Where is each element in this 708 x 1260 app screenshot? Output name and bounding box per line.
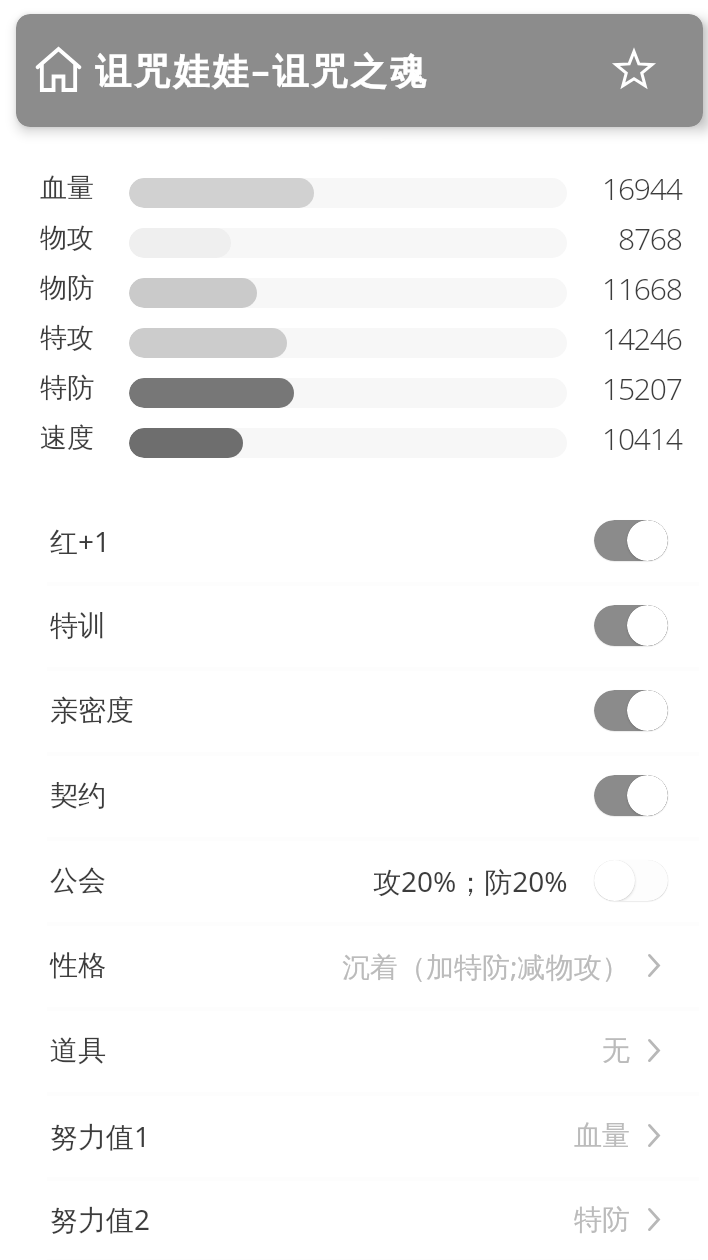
staticText: 血量 <box>574 1118 630 1153</box>
staticText: 10414 <box>602 418 682 459</box>
button[interactable]: 红+1 switch, on <box>594 520 668 561</box>
button[interactable]: 性格 <box>0 923 708 1008</box>
button[interactable]: Favorite <box>606 43 662 99</box>
button[interactable]: 努力值1 <box>0 1093 708 1178</box>
staticText: 努力值1 <box>50 1117 151 1155</box>
staticText: 物防 <box>40 271 112 305</box>
staticText: 特攻 <box>40 321 112 355</box>
button[interactable]: 特训 switch, on <box>594 605 668 646</box>
button[interactable]: 努力值2 <box>0 1178 708 1260</box>
button[interactable]: 道具 <box>0 1008 708 1093</box>
staticText: 特防 <box>40 371 112 405</box>
staticText: 8768 <box>618 218 682 259</box>
staticText: 努力值2 <box>50 1200 151 1238</box>
staticText: 16944 <box>602 168 682 209</box>
staticText: 特防 <box>574 1202 630 1237</box>
button[interactable]: 公会 switch, off <box>594 860 668 901</box>
staticText: 性格 <box>50 948 106 983</box>
button[interactable]: 红+1 <box>0 498 708 583</box>
staticText: 特训 <box>50 608 106 643</box>
staticText: 契约 <box>50 778 106 813</box>
button[interactable]: 契约 <box>0 753 708 838</box>
staticText: 无 <box>602 1033 630 1068</box>
staticText: 速度 <box>40 421 112 455</box>
staticText: 亲密度 <box>50 693 134 728</box>
staticText: 物攻 <box>40 221 112 255</box>
button[interactable]: 亲密度 <box>0 668 708 753</box>
staticText: 血量 <box>40 171 112 205</box>
button[interactable]: 契约 switch, on <box>594 775 668 816</box>
button[interactable]: Home <box>28 41 88 101</box>
staticText: 诅咒娃娃–诅咒之魂 <box>95 46 429 95</box>
staticText: 红+1 <box>50 522 111 560</box>
staticText: 公会 <box>50 863 106 898</box>
button[interactable]: 特训 <box>0 583 708 668</box>
button[interactable]: 亲密度 switch, on <box>594 690 668 731</box>
staticText: 沉着（加特防;减物攻） <box>342 947 630 985</box>
staticText: 道具 <box>50 1033 106 1068</box>
staticText: 攻20%；防20% <box>373 862 568 900</box>
staticText: 11668 <box>602 268 682 309</box>
staticText: 15207 <box>602 368 682 409</box>
button[interactable]: 公会 <box>0 838 708 923</box>
staticText: 14246 <box>602 318 682 359</box>
